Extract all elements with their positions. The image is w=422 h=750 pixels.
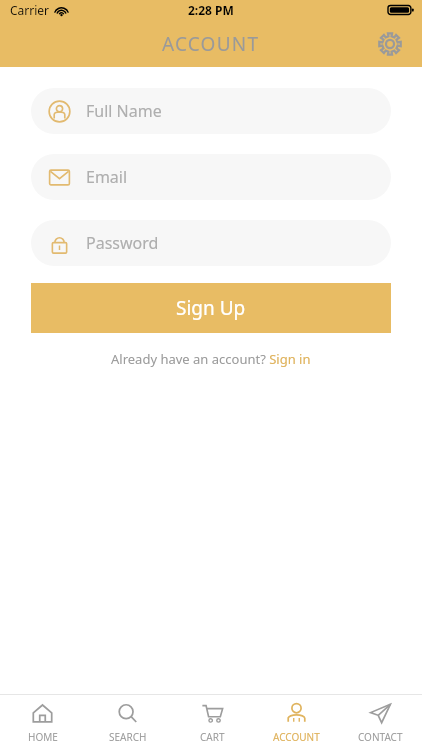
staticText: Sign Up: [176, 295, 246, 321]
button[interactable]: CART: [170, 695, 254, 750]
button[interactable]: ACCOUNT: [254, 695, 338, 750]
staticText: HOME: [28, 730, 58, 744]
button[interactable]: HOME: [0, 695, 85, 750]
button[interactable]: SEARCH: [85, 695, 170, 750]
button[interactable]: Settings: [370, 24, 410, 64]
button[interactable]: Already have an account? Sign in: [105, 347, 317, 371]
staticText: Already have an account? Sign in: [111, 350, 311, 368]
staticText: CART: [200, 730, 225, 744]
staticText: Password: [86, 232, 159, 254]
button[interactable]: Full Name: [31, 88, 391, 134]
button[interactable]: Email: [31, 154, 391, 200]
button[interactable]: Sign Up: [31, 283, 391, 333]
staticText: SEARCH: [109, 730, 147, 744]
button[interactable]: Password: [31, 220, 391, 266]
staticText: CONTACT: [358, 730, 403, 744]
staticText: ACCOUNT: [273, 730, 320, 744]
staticText: ACCOUNT: [162, 31, 260, 57]
staticText: Carrier: [10, 2, 50, 18]
staticText: 2:28 PM: [188, 2, 234, 18]
button[interactable]: CONTACT: [338, 695, 422, 750]
staticText: Full Name: [86, 100, 162, 122]
staticText: Email: [86, 166, 128, 188]
